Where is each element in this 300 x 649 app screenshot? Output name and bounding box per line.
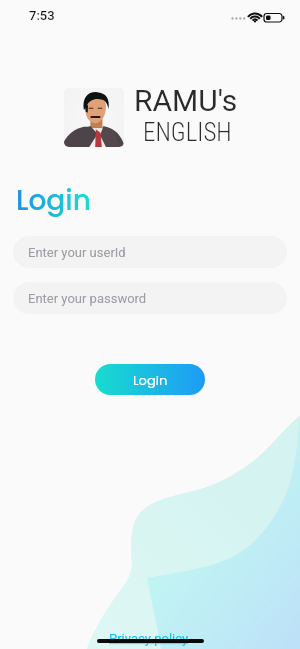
staticText: 7:53 bbox=[29, 8, 55, 23]
staticText: RAMU's bbox=[134, 83, 238, 118]
staticText: Login bbox=[16, 181, 91, 220]
button[interactable]: Enter your password bbox=[13, 282, 287, 314]
button[interactable]: Login bbox=[95, 364, 205, 395]
staticText: Privacy policy bbox=[109, 631, 189, 646]
button[interactable]: Privacy policy bbox=[109, 631, 189, 646]
staticText: ENGLISH bbox=[143, 118, 232, 147]
staticText: Login bbox=[133, 371, 168, 389]
staticText: Enter your userId bbox=[28, 245, 126, 260]
button[interactable]: Enter your userId bbox=[13, 236, 287, 268]
other: Signal, Wi-Fi and battery status bbox=[231, 11, 284, 23]
staticText: Enter your password bbox=[28, 291, 147, 306]
